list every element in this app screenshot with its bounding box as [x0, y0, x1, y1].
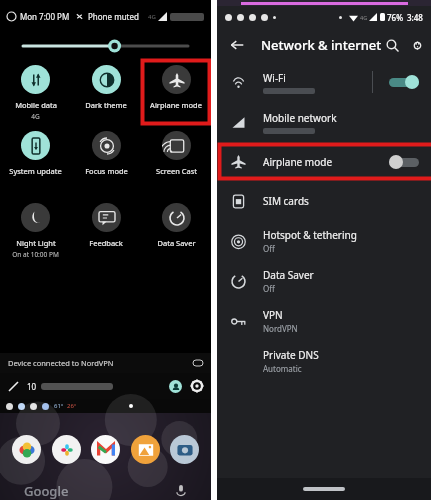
staticText: NordVPN: [263, 323, 298, 334]
button[interactable]: Airplane mode: [217, 142, 431, 181]
button[interactable]: Feedback: [71, 197, 141, 267]
button[interactable]: [12, 435, 41, 464]
button[interactable]: [131, 435, 160, 464]
button[interactable]: Airplane mode: [141, 59, 211, 125]
button[interactable]: Dark theme: [71, 59, 141, 125]
staticText: Automatic: [263, 363, 302, 374]
staticText: Device connected to NordVPN: [8, 358, 114, 368]
staticText: Off: [263, 243, 275, 254]
button[interactable]: VPN: [217, 301, 431, 341]
button[interactable]: [170, 435, 199, 464]
staticText: 4G: [31, 112, 40, 121]
button[interactable]: SIM cards: [217, 181, 431, 221]
staticText: Mon 7:00 PM: [20, 11, 70, 22]
button[interactable]: Night Light: [0, 197, 71, 267]
staticText: Mobile data: [15, 100, 57, 110]
staticText: Airplane mode: [150, 100, 202, 110]
button[interactable]: Mobile network: [217, 102, 431, 142]
button[interactable]: Data Saver: [141, 197, 211, 267]
staticText: System update: [9, 166, 62, 176]
button[interactable]: Data Saver: [217, 261, 431, 301]
staticText: 61°: [54, 402, 64, 410]
staticText: Data Saver: [157, 238, 196, 248]
staticText: Airplane mode: [263, 155, 333, 169]
button[interactable]: Search: [382, 35, 402, 55]
staticText: Focus mode: [85, 166, 128, 176]
staticText: VPN: [263, 308, 283, 322]
button[interactable]: Back: [227, 35, 247, 55]
staticText: 76%: [387, 12, 403, 23]
button[interactable]: Hotspot & tethering: [217, 221, 431, 261]
staticText: 3:48: [407, 12, 423, 23]
staticText: 10: [27, 381, 37, 392]
other: Settings: [191, 380, 203, 392]
staticText: Night Light: [16, 238, 56, 248]
staticText: Mobile network: [263, 111, 337, 125]
staticText: Off: [263, 283, 275, 294]
staticText: 4G: [360, 14, 368, 21]
button[interactable]: [52, 435, 81, 464]
staticText: SIM cards: [263, 194, 309, 208]
button[interactable]: Screen Cast: [141, 125, 211, 197]
staticText: Data Saver: [263, 268, 314, 282]
staticText: Screen Cast: [156, 166, 197, 176]
staticText: Phone muted: [88, 11, 139, 22]
staticText: Feedback: [89, 238, 123, 248]
button[interactable]: Focus mode: [71, 125, 141, 197]
staticText: On at 10:00 PM: [12, 250, 59, 259]
staticText: 26°: [67, 402, 77, 410]
staticText: Google: [24, 482, 69, 500]
staticText: Private DNS: [263, 348, 319, 362]
button[interactable]: Wi-Fi: [217, 62, 431, 102]
button[interactable]: System update: [0, 125, 71, 197]
button[interactable]: [91, 435, 120, 464]
button[interactable]: Mobile data: [0, 59, 71, 125]
staticText: Network & internet: [261, 36, 382, 54]
staticText: Hotspot & tethering: [263, 228, 357, 242]
staticText: Wi-Fi: [263, 71, 286, 85]
button[interactable]: [389, 155, 419, 169]
button[interactable]: [389, 75, 419, 89]
staticText: Dark theme: [85, 100, 127, 110]
button[interactable]: Private DNS: [217, 341, 431, 381]
button[interactable]: Help: [414, 35, 421, 55]
staticText: 4G: [148, 13, 156, 21]
